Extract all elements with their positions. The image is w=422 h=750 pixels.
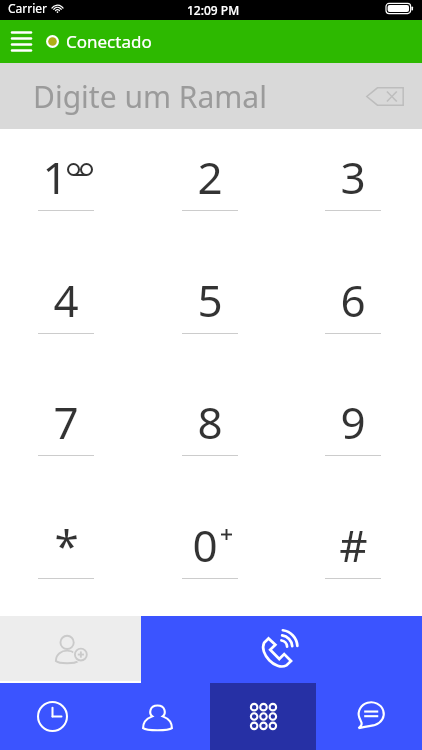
- staticText: *: [54, 515, 79, 567]
- button[interactable]: Menu: [0, 20, 43, 63]
- staticText: 3: [340, 147, 366, 199]
- staticText: 9: [340, 392, 366, 444]
- button[interactable]: [6, 506, 126, 616]
- button[interactable]: [6, 383, 126, 493]
- button[interactable]: Call: [141, 616, 422, 683]
- button[interactable]: [150, 138, 270, 248]
- staticText: 12:09 PM: [187, 2, 240, 18]
- staticText: Digite um Ramal: [33, 76, 267, 117]
- staticText: #: [339, 515, 368, 567]
- button[interactable]: [6, 261, 126, 371]
- button[interactable]: Messages: [316, 683, 422, 750]
- button[interactable]: [293, 506, 413, 616]
- staticText: 6: [340, 270, 366, 322]
- button[interactable]: Recent: [0, 683, 105, 750]
- staticText: 1: [42, 147, 68, 199]
- staticText: 2: [197, 147, 223, 199]
- staticText: 0: [192, 515, 218, 567]
- button[interactable]: Add contact: [0, 616, 141, 681]
- button[interactable]: [293, 261, 413, 371]
- staticText: Conectado: [66, 30, 152, 53]
- staticText: 8: [197, 392, 223, 444]
- button[interactable]: [150, 506, 270, 616]
- button[interactable]: Backspace: [357, 63, 412, 129]
- button[interactable]: Contacts: [105, 683, 210, 750]
- staticText: Carrier: [8, 0, 48, 16]
- button[interactable]: [293, 138, 413, 248]
- staticText: 4: [53, 270, 79, 322]
- button[interactable]: [150, 383, 270, 493]
- button[interactable]: Keypad: [210, 683, 316, 750]
- button[interactable]: [293, 383, 413, 493]
- button[interactable]: [6, 138, 126, 248]
- staticText: 5: [197, 270, 223, 322]
- button[interactable]: [150, 261, 270, 371]
- staticText: 7: [53, 392, 79, 444]
